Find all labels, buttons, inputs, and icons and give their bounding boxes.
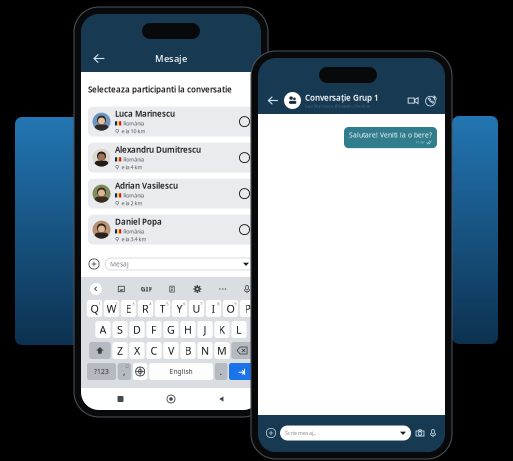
button[interactable]: Daniel Popa <box>88 215 254 245</box>
staticText: A <box>99 322 106 337</box>
button[interactable]: I <box>206 300 221 317</box>
button[interactable]: S <box>112 321 128 338</box>
staticText: 0 <box>251 301 253 306</box>
staticText: 11:47 <box>415 139 424 145</box>
button[interactable]: X <box>129 342 145 359</box>
staticText: O <box>226 301 234 316</box>
button[interactable]: U <box>189 300 204 317</box>
button[interactable]: B <box>180 342 196 359</box>
button[interactable]: C <box>146 342 162 359</box>
staticText: România <box>123 156 144 163</box>
staticText: . <box>220 365 223 378</box>
button[interactable] <box>133 363 147 380</box>
button[interactable]: M <box>214 342 230 359</box>
staticText: România <box>123 228 144 235</box>
button[interactable]: Luca Marinescu <box>88 107 254 137</box>
staticText: Selecteaza participanti la conversatie <box>88 84 232 95</box>
staticText: ?123 <box>94 367 109 376</box>
staticText: 5 <box>166 301 168 306</box>
button[interactable]: Home <box>160 392 182 406</box>
button[interactable]: Voice input <box>240 282 254 295</box>
staticText: ☺ <box>125 364 129 368</box>
button[interactable]: More <box>215 282 231 295</box>
button[interactable]: R <box>138 300 153 317</box>
button[interactable]: Back <box>210 392 232 406</box>
button[interactable]: D <box>129 321 145 338</box>
button[interactable]: G <box>163 321 179 338</box>
button[interactable]: Stickers <box>113 282 129 295</box>
staticText: Mesaj <box>110 260 129 268</box>
button[interactable]: GIF <box>139 282 155 295</box>
button[interactable]: ?123 <box>87 363 116 380</box>
button[interactable]: Clipboard <box>164 282 180 295</box>
button[interactable]: Collapse keyboard <box>88 282 104 295</box>
button[interactable]: O <box>223 300 238 317</box>
staticText: e la 4 km <box>121 164 142 171</box>
button[interactable]: Video call <box>407 94 419 106</box>
staticText: J <box>203 322 206 337</box>
staticText: C <box>150 343 157 358</box>
staticText: P <box>244 301 250 316</box>
staticText: English <box>170 367 193 376</box>
button[interactable]: Recents <box>109 392 131 406</box>
button[interactable]: . <box>215 363 227 380</box>
button[interactable]: T <box>155 300 170 317</box>
staticText: Salutare! Veniti la o bere? <box>349 130 432 139</box>
button[interactable]: A <box>95 321 111 338</box>
button[interactable]: F <box>146 321 162 338</box>
button[interactable]: Voice call <box>419 94 437 106</box>
staticText: , <box>123 365 126 378</box>
button[interactable]: Q <box>87 300 102 317</box>
button[interactable]: L <box>231 321 247 338</box>
staticText: România <box>123 120 144 127</box>
button[interactable] <box>89 342 111 359</box>
staticText: GIF <box>141 285 153 293</box>
staticText: I <box>211 301 215 316</box>
button[interactable]: Z <box>112 342 128 359</box>
button[interactable]: W <box>104 300 119 317</box>
button[interactable]: K <box>214 321 230 338</box>
staticText: N <box>201 343 209 358</box>
button[interactable]: V <box>163 342 179 359</box>
button[interactable]: , <box>118 363 131 380</box>
staticText: E <box>125 301 131 316</box>
staticText: Conversație Grup 1 <box>305 92 379 103</box>
staticText: Mesaje <box>155 52 187 65</box>
button[interactable]: Attach <box>266 428 276 438</box>
button[interactable]: Adrian Vasilescu <box>88 179 254 209</box>
button[interactable]: J <box>197 321 213 338</box>
button[interactable] <box>231 342 253 359</box>
button[interactable]: Attach <box>88 258 100 270</box>
staticText: K <box>218 322 225 337</box>
button[interactable]: Alexandru Dumitrescu <box>88 143 254 173</box>
button[interactable]: Voice message <box>429 428 437 438</box>
staticText: B <box>184 343 191 358</box>
staticText: Adrian Vasilescu <box>115 180 178 191</box>
staticText: 4 <box>149 301 151 306</box>
button[interactable]: Camera <box>415 428 425 438</box>
button[interactable]: Back <box>266 93 280 107</box>
staticText: Luca Marinescu <box>115 108 175 119</box>
staticText: M <box>217 343 227 358</box>
button[interactable]: N <box>197 342 213 359</box>
button[interactable]: E <box>121 300 136 317</box>
staticText: 3 <box>132 301 134 306</box>
button[interactable]: H <box>180 321 196 338</box>
staticText: L <box>236 322 242 337</box>
staticText: Luca Marinescu, Alexandru Dimitrov <box>305 103 370 109</box>
staticText: 9 <box>234 301 236 306</box>
staticText: e la 3.4 km <box>121 236 146 243</box>
staticText: H <box>184 322 192 337</box>
staticText: 8 <box>217 301 219 306</box>
staticText: e la 10 km <box>121 128 145 135</box>
button[interactable]: Back <box>90 49 108 67</box>
staticText: S <box>117 322 123 337</box>
button[interactable]: Keyboard settings <box>189 282 205 295</box>
staticText: U <box>192 301 200 316</box>
staticText: V <box>168 343 174 358</box>
button[interactable]: English <box>149 363 213 380</box>
button[interactable]: P <box>240 300 255 317</box>
button[interactable]: Y <box>172 300 187 317</box>
staticText: Y <box>176 301 182 316</box>
button[interactable] <box>229 363 255 380</box>
